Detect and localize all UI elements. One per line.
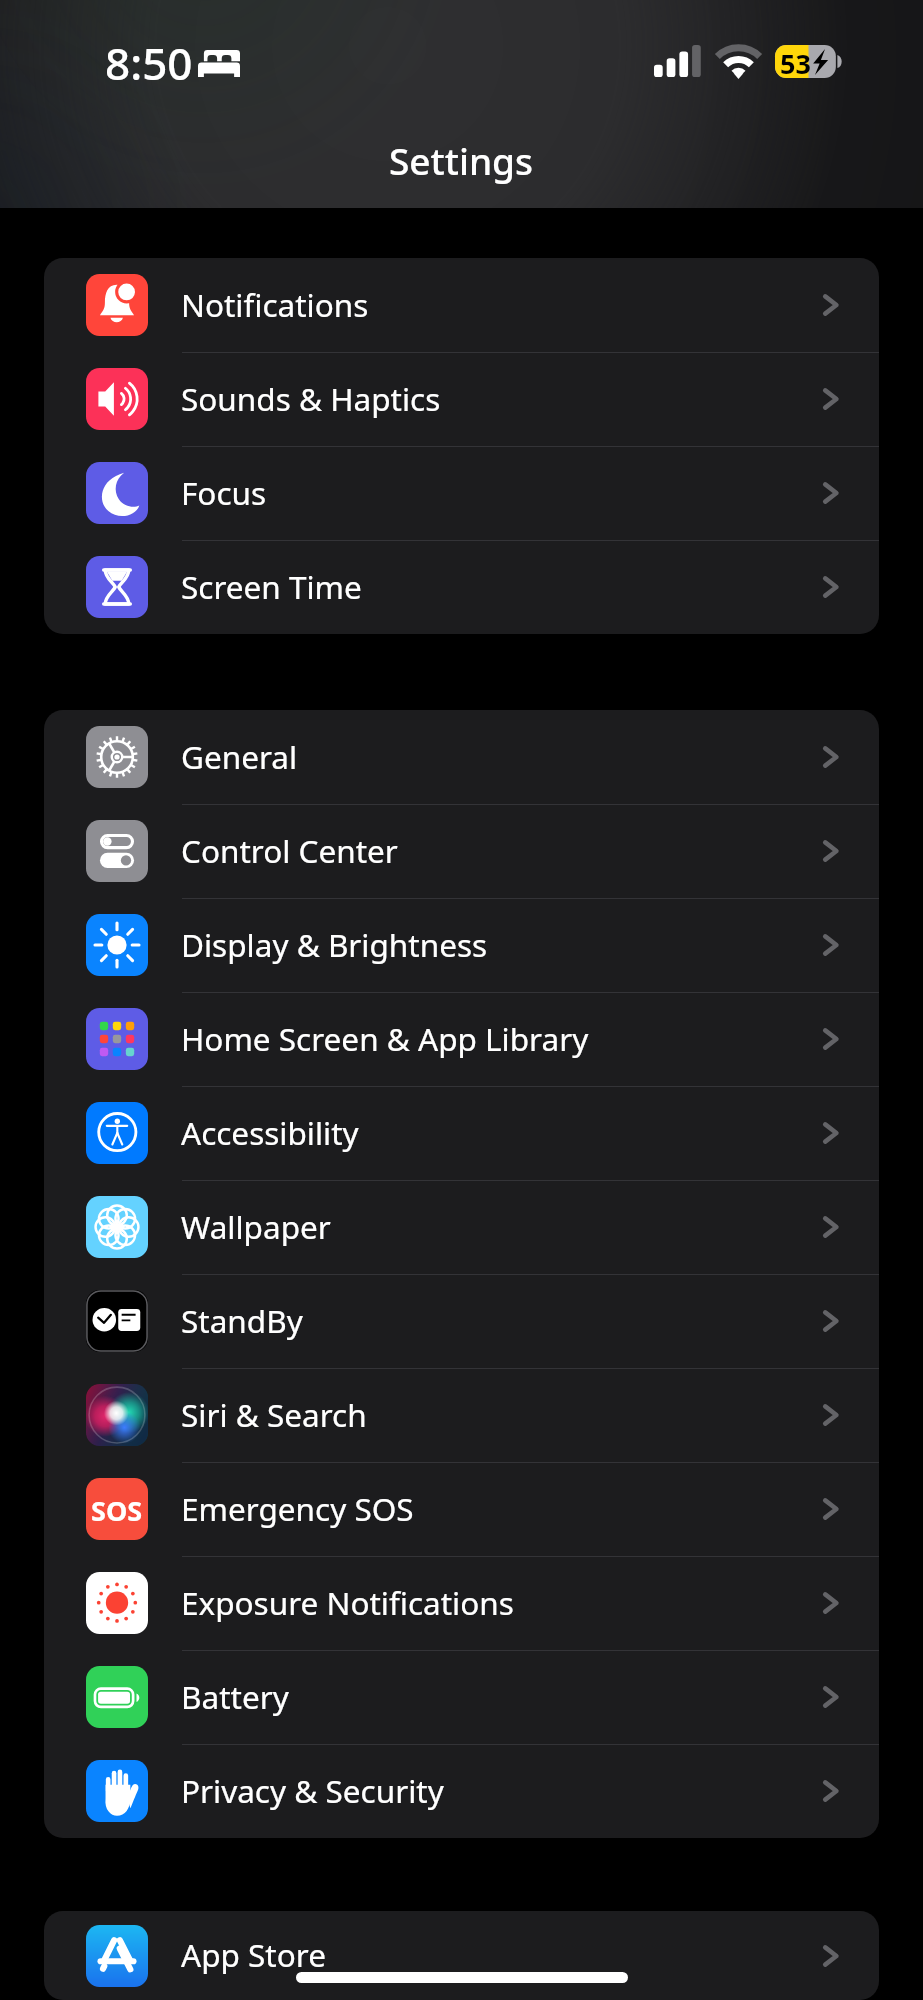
button[interactable]: Display & Brightness: [44, 898, 879, 992]
staticText: Settings: [389, 135, 534, 185]
button[interactable]: StandBy: [44, 1274, 879, 1368]
staticText: Focus: [181, 471, 267, 514]
staticText: 53: [780, 45, 811, 78]
button[interactable]: Control Center: [44, 804, 879, 898]
staticText: Emergency SOS: [181, 1487, 414, 1530]
staticText: Battery: [181, 1675, 289, 1718]
button[interactable]: Wallpaper: [44, 1180, 879, 1274]
staticText: Privacy & Security: [181, 1769, 444, 1812]
staticText: Control Center: [181, 829, 398, 872]
button[interactable]: Exposure Notifications: [44, 1556, 879, 1650]
staticText: Screen Time: [181, 565, 362, 608]
staticText: App Store: [181, 1933, 326, 1976]
staticText: Sounds & Haptics: [181, 377, 441, 420]
button[interactable]: Accessibility: [44, 1086, 879, 1180]
button[interactable]: General: [44, 710, 879, 804]
button[interactable]: Screen Time: [44, 540, 879, 634]
button[interactable]: App Store: [44, 1911, 879, 2000]
staticText: Notifications: [181, 283, 369, 326]
button[interactable]: Home Screen & App Library: [44, 992, 879, 1086]
staticText: General: [181, 735, 298, 778]
staticText: Exposure Notifications: [181, 1581, 514, 1624]
staticText: Siri & Search: [181, 1393, 367, 1436]
staticText: SOS: [91, 1492, 143, 1529]
button[interactable]: Privacy & Security: [44, 1744, 879, 1838]
staticText: Accessibility: [181, 1111, 359, 1154]
staticText: 8:50: [105, 33, 193, 93]
button[interactable]: Focus: [44, 446, 879, 540]
button[interactable]: Siri & Search: [44, 1368, 879, 1462]
button[interactable]: Emergency SOS: [44, 1462, 879, 1556]
staticText: StandBy: [181, 1299, 303, 1342]
button[interactable]: Notifications: [44, 258, 879, 352]
staticText: Home Screen & App Library: [181, 1017, 589, 1060]
button[interactable]: Sounds & Haptics: [44, 352, 879, 446]
button[interactable]: Battery: [44, 1650, 879, 1744]
staticText: Wallpaper: [181, 1205, 331, 1248]
staticText: Display & Brightness: [181, 923, 488, 966]
